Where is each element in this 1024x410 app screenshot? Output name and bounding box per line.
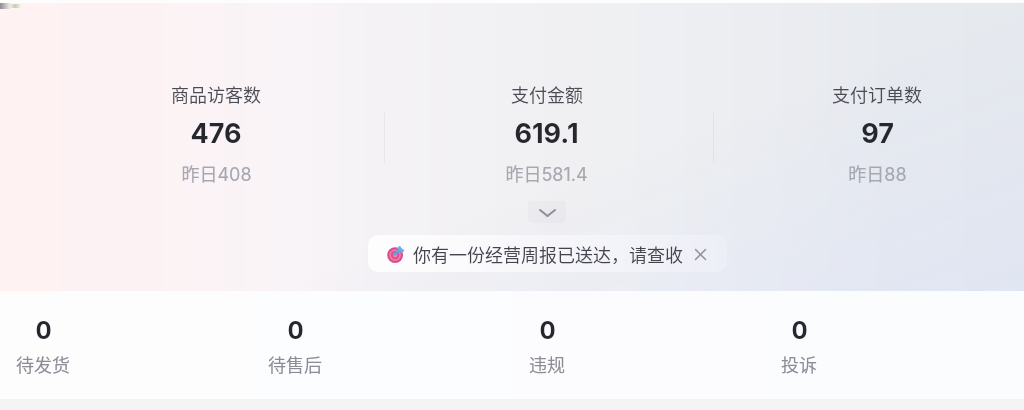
staticText: 违规 bbox=[529, 351, 565, 377]
staticText: 0 bbox=[539, 316, 556, 345]
button[interactable]: 你有一份经营周报已送达，请查收 bbox=[368, 235, 727, 272]
button[interactable]: 支付订单数 bbox=[747, 81, 1007, 186]
staticText: 97 bbox=[861, 117, 894, 150]
button[interactable]: 0 bbox=[0, 316, 143, 377]
button[interactable]: Expand bbox=[528, 201, 566, 223]
staticText: 投诉 bbox=[781, 351, 817, 377]
button[interactable]: 0 bbox=[447, 316, 647, 377]
staticText: 支付金额 bbox=[511, 81, 583, 107]
staticText: 0 bbox=[35, 316, 52, 345]
button[interactable]: Close bbox=[692, 246, 709, 263]
button[interactable]: 支付金额 bbox=[416, 81, 676, 186]
staticText: 0 bbox=[791, 316, 808, 345]
staticText: 昨日581.4 bbox=[505, 160, 588, 186]
staticText: 昨日88 bbox=[848, 160, 907, 186]
staticText: 待售后 bbox=[268, 351, 322, 377]
staticText: 昨日408 bbox=[181, 160, 252, 186]
staticText: 待发货 bbox=[16, 351, 70, 377]
button[interactable]: 商品访客数 bbox=[86, 81, 346, 186]
staticText: 476 bbox=[190, 117, 242, 150]
staticText: 0 bbox=[287, 316, 304, 345]
button[interactable]: 0 bbox=[195, 316, 395, 377]
staticText: 商品访客数 bbox=[171, 81, 261, 107]
staticText: 支付订单数 bbox=[832, 81, 922, 107]
staticText: 619.1 bbox=[514, 117, 579, 150]
staticText: 你有一份经营周报已送达，请查收 bbox=[413, 241, 683, 267]
button[interactable]: 0 bbox=[699, 316, 899, 377]
